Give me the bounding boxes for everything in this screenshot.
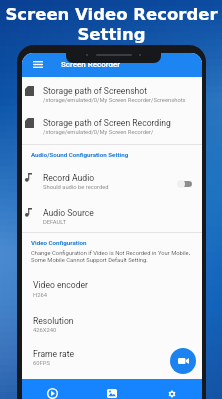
staticText: Storage path of Screenshot xyxy=(43,86,148,96)
button[interactable] xyxy=(22,201,202,230)
staticText: 426X240 xyxy=(33,327,57,334)
staticText: DEFAULT xyxy=(43,219,67,226)
staticText: /storage/emulated/0/My Screen Recorder/S… xyxy=(43,97,186,104)
staticText: Screen Recorder xyxy=(61,60,121,69)
button[interactable]: Open navigation menu xyxy=(33,61,43,68)
staticText: Record Audio xyxy=(43,173,95,183)
button[interactable] xyxy=(22,111,202,140)
button[interactable] xyxy=(22,79,202,108)
staticText: Change Configuration if Video is Not Rec… xyxy=(31,250,190,264)
staticText: Frame rate xyxy=(33,349,75,359)
staticText: H264 xyxy=(33,292,47,299)
staticText: Should audio be recorded xyxy=(43,184,109,191)
button[interactable] xyxy=(22,309,202,339)
button[interactable] xyxy=(22,342,202,372)
staticText: Storage path of Screen Recording xyxy=(43,118,171,128)
button[interactable] xyxy=(22,166,202,195)
button[interactable]: Start recording xyxy=(22,379,82,399)
staticText: 60FPS xyxy=(33,360,50,367)
button[interactable]: Start recording xyxy=(170,348,196,374)
staticText: Video encoder xyxy=(33,280,89,290)
button[interactable]: Gallery xyxy=(82,379,142,399)
button[interactable]: Settings xyxy=(142,379,202,399)
staticText: Video Configuration xyxy=(31,239,87,246)
staticText: Audio/Sound Configuration Setting xyxy=(31,151,129,158)
staticText: Audio Source xyxy=(43,208,94,218)
staticText: Screen Video Recorder Setting xyxy=(5,5,218,44)
button[interactable] xyxy=(22,273,202,303)
staticText: Resolution xyxy=(33,316,74,326)
staticText: /storage/emulated/0/My Screen Recorder/ xyxy=(43,129,154,136)
